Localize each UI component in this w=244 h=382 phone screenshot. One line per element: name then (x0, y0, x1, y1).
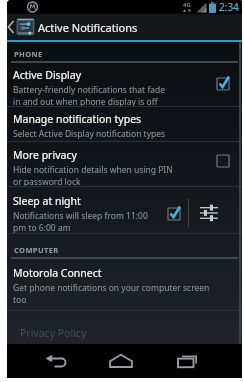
staticText: Battery-friendly notifications that fade (13, 84, 166, 96)
button[interactable]: Active Notifications (7, 14, 242, 40)
button[interactable]: More privacy (7, 142, 242, 186)
button[interactable]: Sleep at night (7, 187, 242, 233)
staticText: Active Display (13, 68, 82, 82)
button[interactable]: Motorola Connect (7, 259, 242, 310)
staticText: in and out when phone display is off (13, 96, 158, 106)
staticText: More privacy (13, 148, 77, 162)
staticText: Get phone notifications on your computer… (13, 282, 210, 294)
staticText: or password lock (13, 176, 81, 186)
staticText: pm to 6:00 am (13, 222, 71, 233)
staticText: PHONE (14, 49, 43, 59)
button[interactable]: Manage notification types (7, 107, 242, 141)
staticText: Manage notification types (13, 112, 142, 126)
staticText: 4G (183, 1, 191, 9)
staticText: Select Active Display notification types (13, 128, 166, 140)
staticText: Sleep at night (13, 194, 81, 208)
staticText: Privacy Policy (20, 326, 87, 340)
staticText: Active Notifications (38, 20, 138, 35)
button[interactable] (106, 346, 136, 376)
staticText: too (13, 294, 27, 306)
staticText: 2:34 (219, 0, 239, 14)
staticText: COMPUTER (14, 245, 59, 255)
staticText: Motorola Connect (13, 266, 102, 280)
button[interactable]: Active Display (7, 63, 242, 106)
button[interactable]: Privacy Policy (7, 311, 242, 344)
staticText: Hide notification details when using PIN (13, 164, 173, 176)
button[interactable] (172, 346, 202, 376)
button[interactable] (41, 346, 71, 376)
staticText: Notifications will sleep from 11:00 (13, 210, 148, 222)
